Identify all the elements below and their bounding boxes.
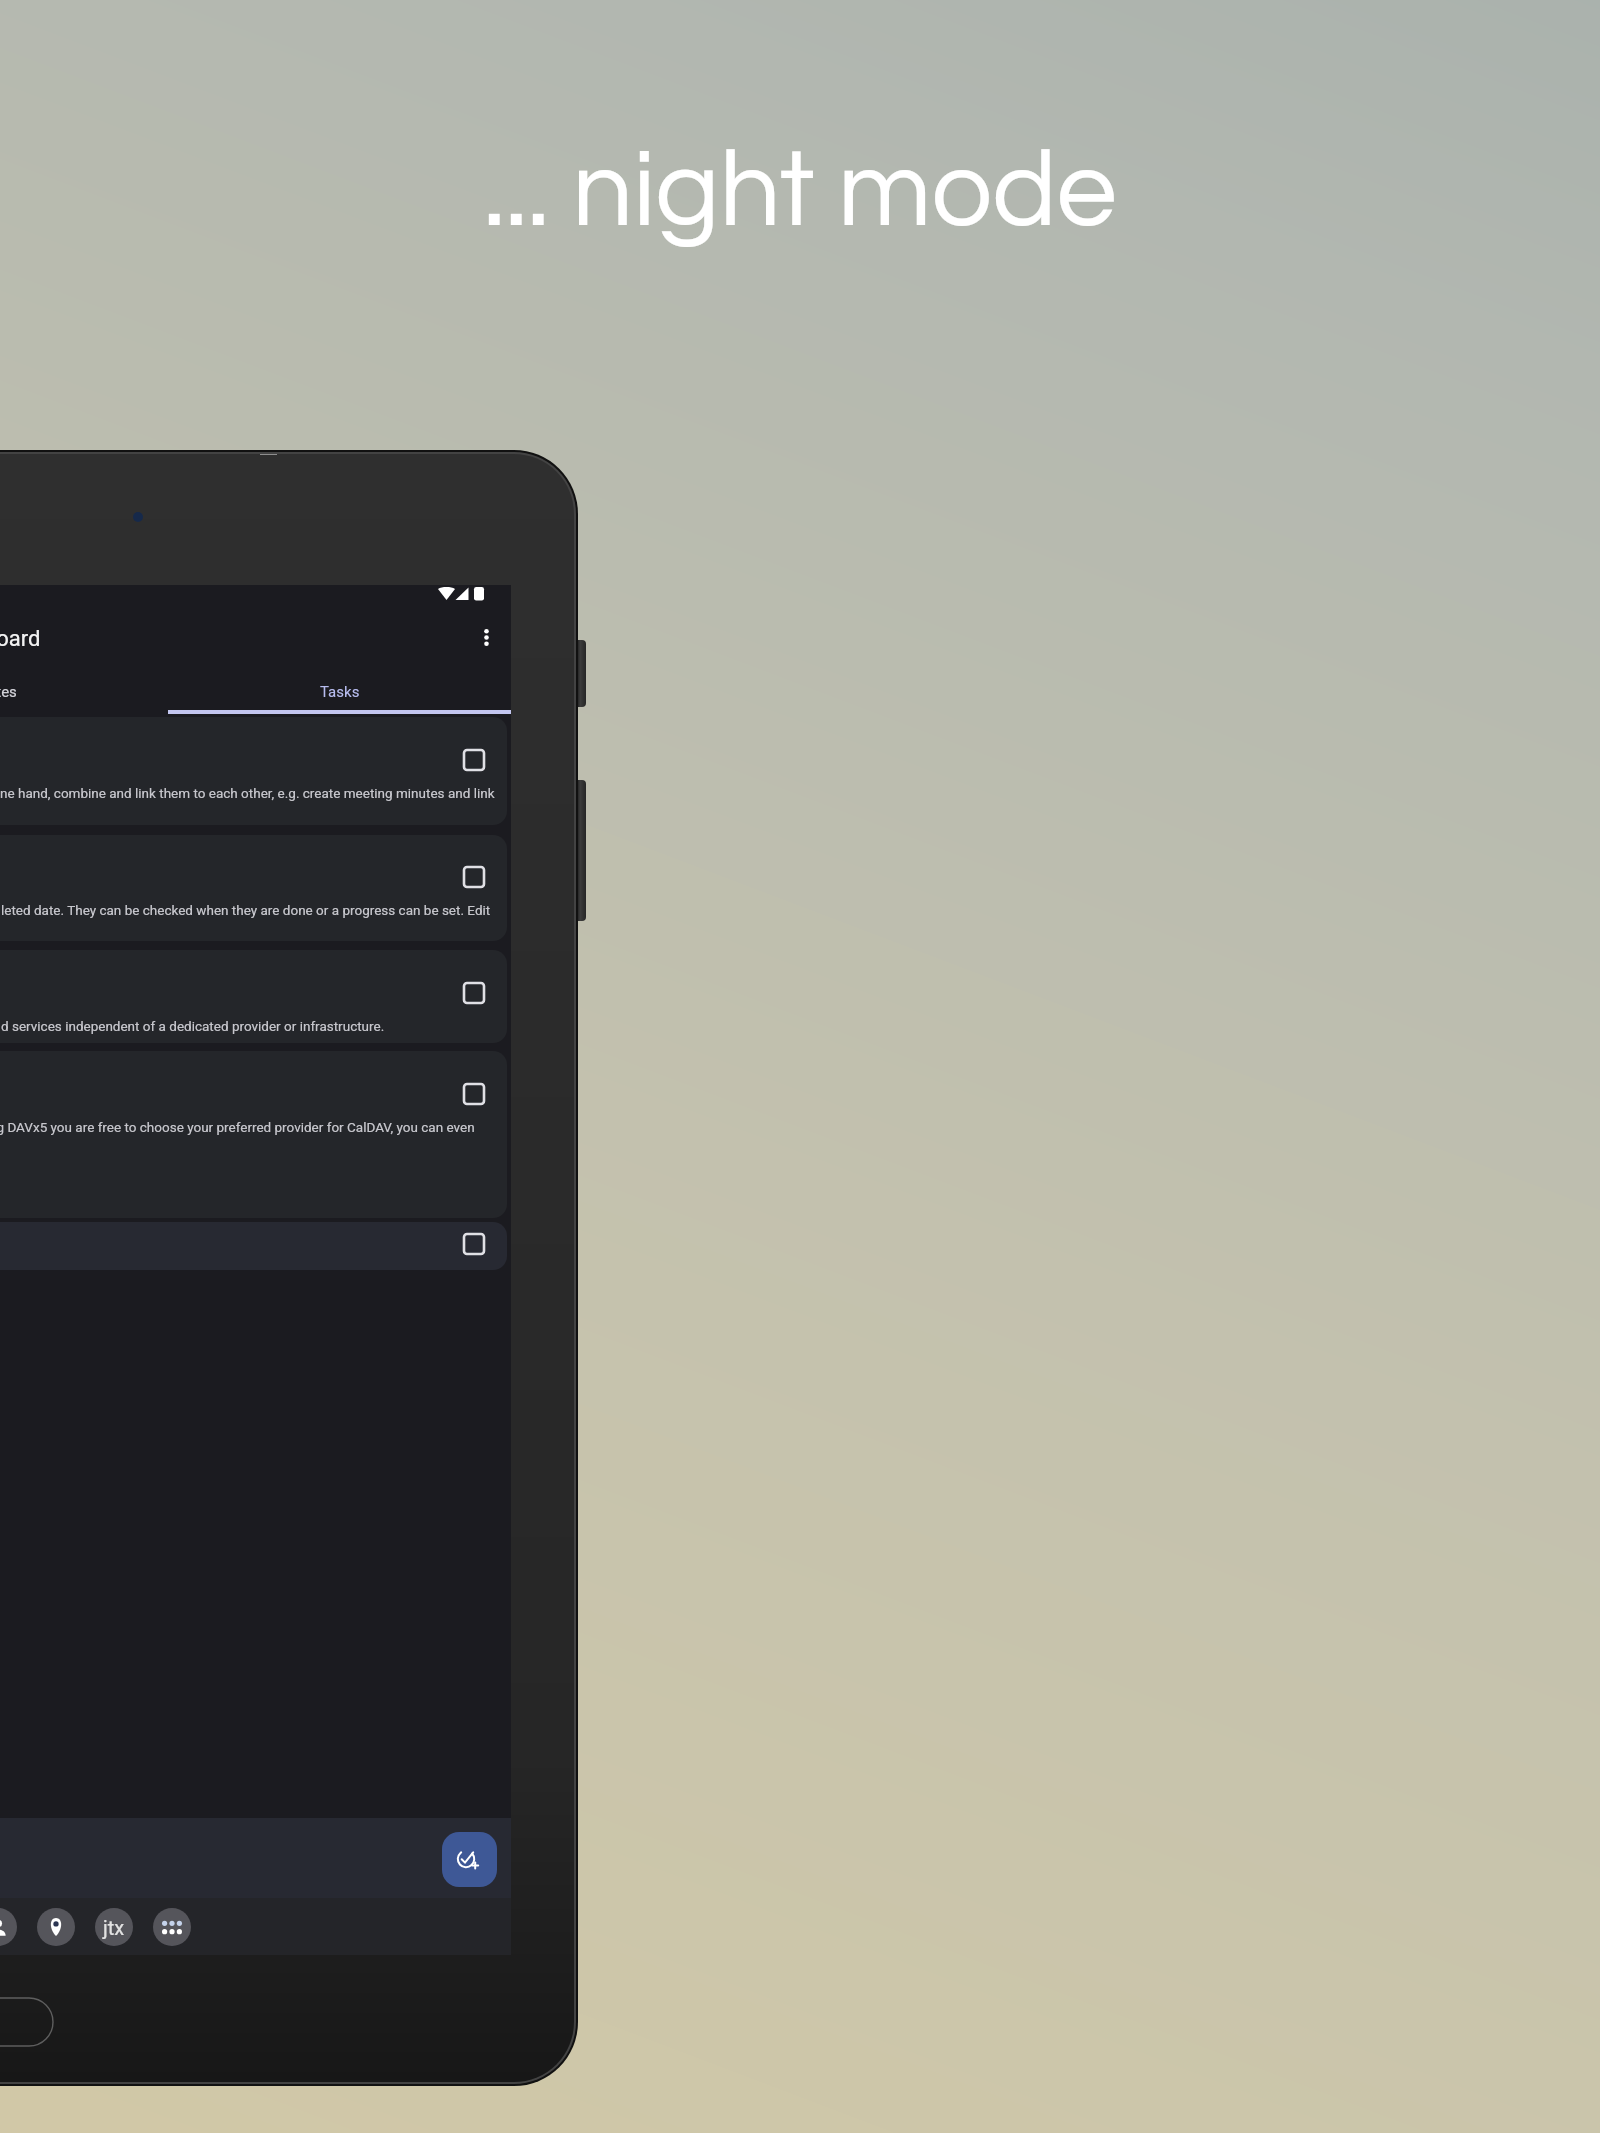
button[interactable]: Toggle task complete [0,1051,507,1218]
button[interactable]: Toggle task complete [462,1232,486,1256]
button[interactable]: Toggle task complete [462,981,486,1005]
button[interactable]: Toggle task complete [0,717,507,825]
button[interactable]: Toggle task complete [0,835,507,941]
button[interactable]: Toggle task complete [462,748,486,772]
button[interactable]: Toggle task complete [0,950,507,1043]
button[interactable]: Tasks [168,669,511,714]
button[interactable]: Contacts [0,1908,17,1946]
button[interactable]: Add task [442,1832,497,1887]
button[interactable]: More options [469,620,503,654]
button[interactable]: Maps [37,1908,75,1946]
staticText: Dashboard [0,626,41,652]
staticText: ng DAVx5 you are free to choose your pre… [0,1119,475,1135]
staticText: leted date. They can be checked when the… [1,902,491,918]
staticText: Tasks [320,683,360,701]
button[interactable]: Toggle task complete [462,865,486,889]
button[interactable]: Toggle task complete [462,1082,486,1106]
staticText: Notes [0,683,17,701]
staticText: d services independent of a dedicated pr… [1,1018,385,1034]
button[interactable]: Notes [0,669,168,714]
staticText: ... night mode [0,136,1600,247]
button[interactable]: jtx Board [95,1908,133,1946]
button[interactable]: Toggle task complete [0,1222,507,1270]
staticText: jtx [103,1916,125,1939]
staticText: ne hand, combine and link them to each o… [0,785,495,801]
button[interactable]: All apps [153,1908,191,1946]
